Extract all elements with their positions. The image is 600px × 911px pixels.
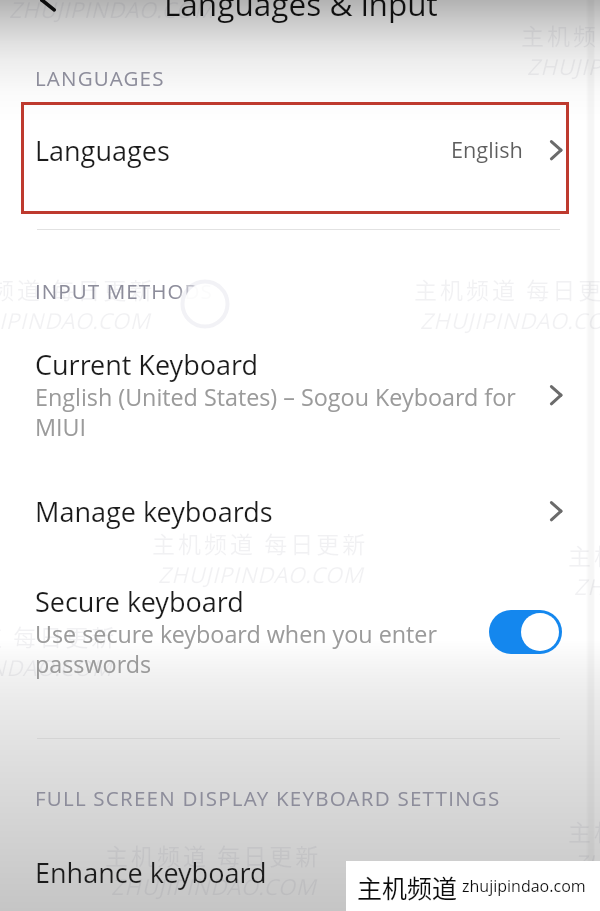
staticText: 主机频道 每日更新 (0, 619, 118, 652)
staticText: ZHUJIPINDAO.COM (0, 652, 113, 682)
staticText: Languages (35, 132, 170, 169)
staticText: 主机频道 每日更新 (521, 18, 600, 51)
staticText: 主机频道 每日更新 (568, 538, 600, 571)
staticText: ZHUJIPINDAO.COM (158, 559, 364, 589)
staticText: Current Keyboard (35, 346, 259, 383)
staticText: zhujipindao.com (462, 875, 586, 897)
staticText: Use secure keyboard when you enter passw… (35, 618, 481, 679)
staticText: English (United States) – Sogou Keyboard… (35, 381, 531, 442)
staticText: ZHUJIPINDAO.COM (527, 51, 600, 81)
staticText: 主机频道 每日更新 (105, 838, 322, 871)
button[interactable]: Languages (0, 114, 600, 186)
staticText: ZHUJIPINDAO.COM (574, 571, 600, 601)
staticText: Languages & input (164, 0, 438, 25)
staticText: Secure keyboard (35, 583, 244, 620)
staticText: INPUT METHODS (35, 277, 213, 305)
button[interactable]: Enhance keyboard (0, 848, 600, 896)
staticText: English (451, 135, 523, 165)
staticText: ZHUJIPINDAO.COM (420, 305, 600, 335)
staticText: FULL SCREEN DISPLAY KEYBOARD SETTINGS (35, 784, 501, 812)
staticText: Manage keyboards (35, 493, 543, 530)
button[interactable]: Manage keyboards (0, 487, 600, 535)
staticText: ZHUJIPINDAO.COM (574, 847, 600, 877)
button[interactable]: Secure keyboard toggle, on (489, 610, 562, 654)
staticText: 主机频道 每日更新 (0, 272, 156, 305)
staticText: 主机频道 每日更新 (414, 272, 600, 305)
staticText: ZHUJIPINDAO.COM (9, 0, 215, 24)
staticText: 主机频道 每日更新 (568, 814, 600, 847)
button[interactable]: Current Keyboard (0, 346, 600, 444)
button[interactable]: Secure keyboard (0, 583, 600, 681)
staticText: ZHUJIPINDAO.COM (0, 305, 151, 335)
button[interactable]: Back (32, 0, 62, 15)
staticText: 主机频道 每日更新 (152, 526, 369, 559)
staticText: LANGUAGES (35, 64, 165, 92)
staticText: ZHUJIPINDAO.COM (111, 871, 317, 901)
staticText: 主机频道 (357, 869, 458, 905)
staticText: Enhance keyboard (35, 854, 567, 891)
